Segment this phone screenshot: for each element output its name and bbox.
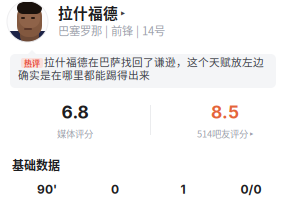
staticText: 514吧友评分 xyxy=(197,127,248,140)
button[interactable]: 6.8 xyxy=(0,104,150,138)
staticText: 媒体评分 xyxy=(57,127,93,140)
staticText: 0/0 xyxy=(240,182,261,196)
button[interactable]: 热评 xyxy=(10,54,276,88)
staticText: 90' xyxy=(37,182,57,196)
staticText: 6.8 xyxy=(61,102,88,123)
staticText: 拉什福德 xyxy=(58,2,118,23)
staticText: 巴塞罗那 | 前锋 | 14号 xyxy=(58,22,165,38)
staticText: 基础数据 xyxy=(12,156,60,173)
staticText: 热评 xyxy=(24,57,40,69)
button[interactable]: 1 xyxy=(149,182,217,200)
staticText: 8.5 xyxy=(211,102,239,123)
staticText: 确实是在哪里都能踢得出来 xyxy=(18,67,150,82)
button[interactable]: 0 xyxy=(81,182,149,200)
button[interactable]: 90' xyxy=(13,182,81,200)
staticText: ▸ xyxy=(121,8,125,17)
button[interactable]: 8.5 xyxy=(150,104,300,138)
staticText: ▸ xyxy=(250,130,253,137)
staticText: 拉什福德在巴萨找回了谦逊，这个天赋放左边 xyxy=(44,54,264,69)
button[interactable]: 拉什福德 xyxy=(58,2,238,42)
button[interactable]: 0/0 xyxy=(217,182,285,200)
staticText: 0 xyxy=(111,182,119,196)
button[interactable]: 球员头像 xyxy=(7,1,48,42)
staticText: 1 xyxy=(180,182,185,196)
